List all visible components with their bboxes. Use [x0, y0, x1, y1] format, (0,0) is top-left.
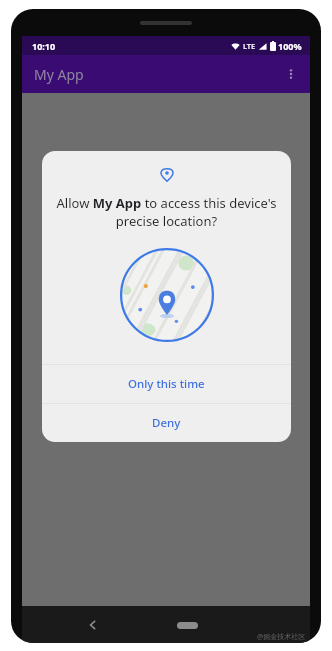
staticText: Only this time	[128, 376, 205, 392]
staticText: 100%	[278, 40, 302, 52]
button[interactable]: Deny	[42, 404, 291, 442]
staticText: Allow My App to access this device's pre…	[56, 194, 277, 230]
staticText: @掘金技术社区	[257, 632, 306, 642]
button[interactable]: Back	[78, 610, 108, 640]
button[interactable]: Home	[167, 616, 207, 634]
button[interactable]: More options	[276, 59, 306, 89]
staticText: 10:10	[32, 40, 56, 52]
staticText: LTE	[243, 41, 256, 51]
staticText: Deny	[152, 415, 181, 431]
button[interactable]: Only this time	[42, 365, 291, 403]
staticText: My App	[34, 65, 84, 84]
